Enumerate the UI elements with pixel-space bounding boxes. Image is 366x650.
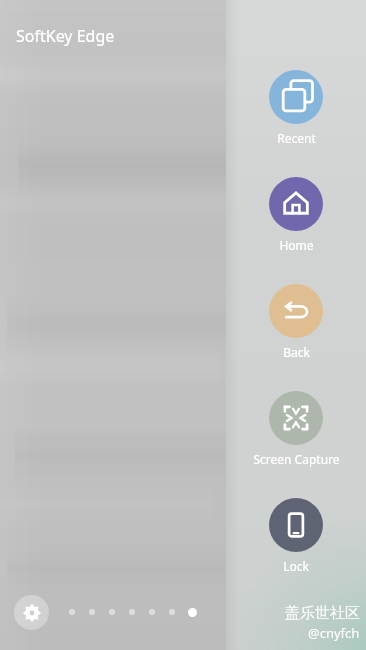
- staticText: Back: [283, 344, 310, 360]
- button[interactable]: [82, 602, 102, 622]
- staticText: Screen Capture: [253, 451, 340, 467]
- button[interactable]: [62, 602, 82, 622]
- button[interactable]: [182, 602, 202, 622]
- staticText: SoftKey Edge: [16, 25, 115, 47]
- button[interactable]: [102, 602, 122, 622]
- staticText: Home: [279, 237, 314, 253]
- button[interactable]: Settings: [14, 595, 49, 630]
- staticText: Recent: [277, 130, 316, 146]
- button[interactable]: Home: [226, 177, 366, 253]
- button[interactable]: [142, 602, 162, 622]
- button[interactable]: [162, 602, 182, 622]
- button[interactable]: Back: [226, 284, 366, 360]
- button[interactable]: Lock: [226, 498, 366, 574]
- button[interactable]: Recent: [226, 70, 366, 146]
- staticText: Lock: [283, 558, 309, 574]
- staticText: @cnyfch: [308, 624, 360, 642]
- button[interactable]: [122, 602, 142, 622]
- button[interactable]: Screen Capture: [226, 391, 366, 467]
- staticText: 盖乐世社区: [285, 604, 360, 623]
